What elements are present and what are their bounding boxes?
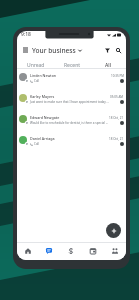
staticText: 10:35 PM <box>111 74 124 78</box>
staticText: Daniel Arriaga <box>30 136 55 141</box>
button[interactable]: Unread <box>17 62 54 68</box>
staticText: Call <box>34 79 119 83</box>
button[interactable]: Karley Mayers <box>17 90 126 111</box>
button[interactable]: Home <box>17 243 38 260</box>
button[interactable]: Calendar <box>82 243 104 260</box>
staticText: Just want to make sure that I have appoi… <box>30 100 119 104</box>
staticText: 18 Oct, 21 <box>109 116 124 120</box>
button[interactable]: Payments <box>60 243 82 260</box>
staticText: Linden Newton <box>30 73 57 78</box>
staticText: 9:18 <box>21 31 31 38</box>
button[interactable]: Linden Newton <box>17 69 126 90</box>
staticText: Edward Newgate <box>30 115 60 120</box>
staticText: Call <box>34 142 119 146</box>
staticText: Would like to reschedule for dentist, is… <box>30 121 119 125</box>
button[interactable]: Filter <box>102 45 113 56</box>
staticText: Unread <box>27 62 45 68</box>
button[interactable]: Edward Newgate <box>17 111 126 132</box>
button[interactable]: Search <box>113 45 124 56</box>
button[interactable]: Daniel Arriaga <box>17 132 126 153</box>
button[interactable]: Menu <box>20 45 30 55</box>
button[interactable]: Messages <box>38 243 60 260</box>
staticText: 18 Oct, 21 <box>109 137 124 141</box>
button[interactable]: New message <box>106 223 121 238</box>
staticText: 05:05 AM <box>110 95 124 99</box>
staticText: All <box>105 62 111 68</box>
button[interactable]: All <box>90 62 126 68</box>
staticText: Your business <box>32 46 76 55</box>
button[interactable]: Recent <box>54 62 90 68</box>
button[interactable]: Customers <box>104 243 126 260</box>
staticText: Recent <box>64 62 81 68</box>
staticText: Karley Mayers <box>30 94 55 99</box>
